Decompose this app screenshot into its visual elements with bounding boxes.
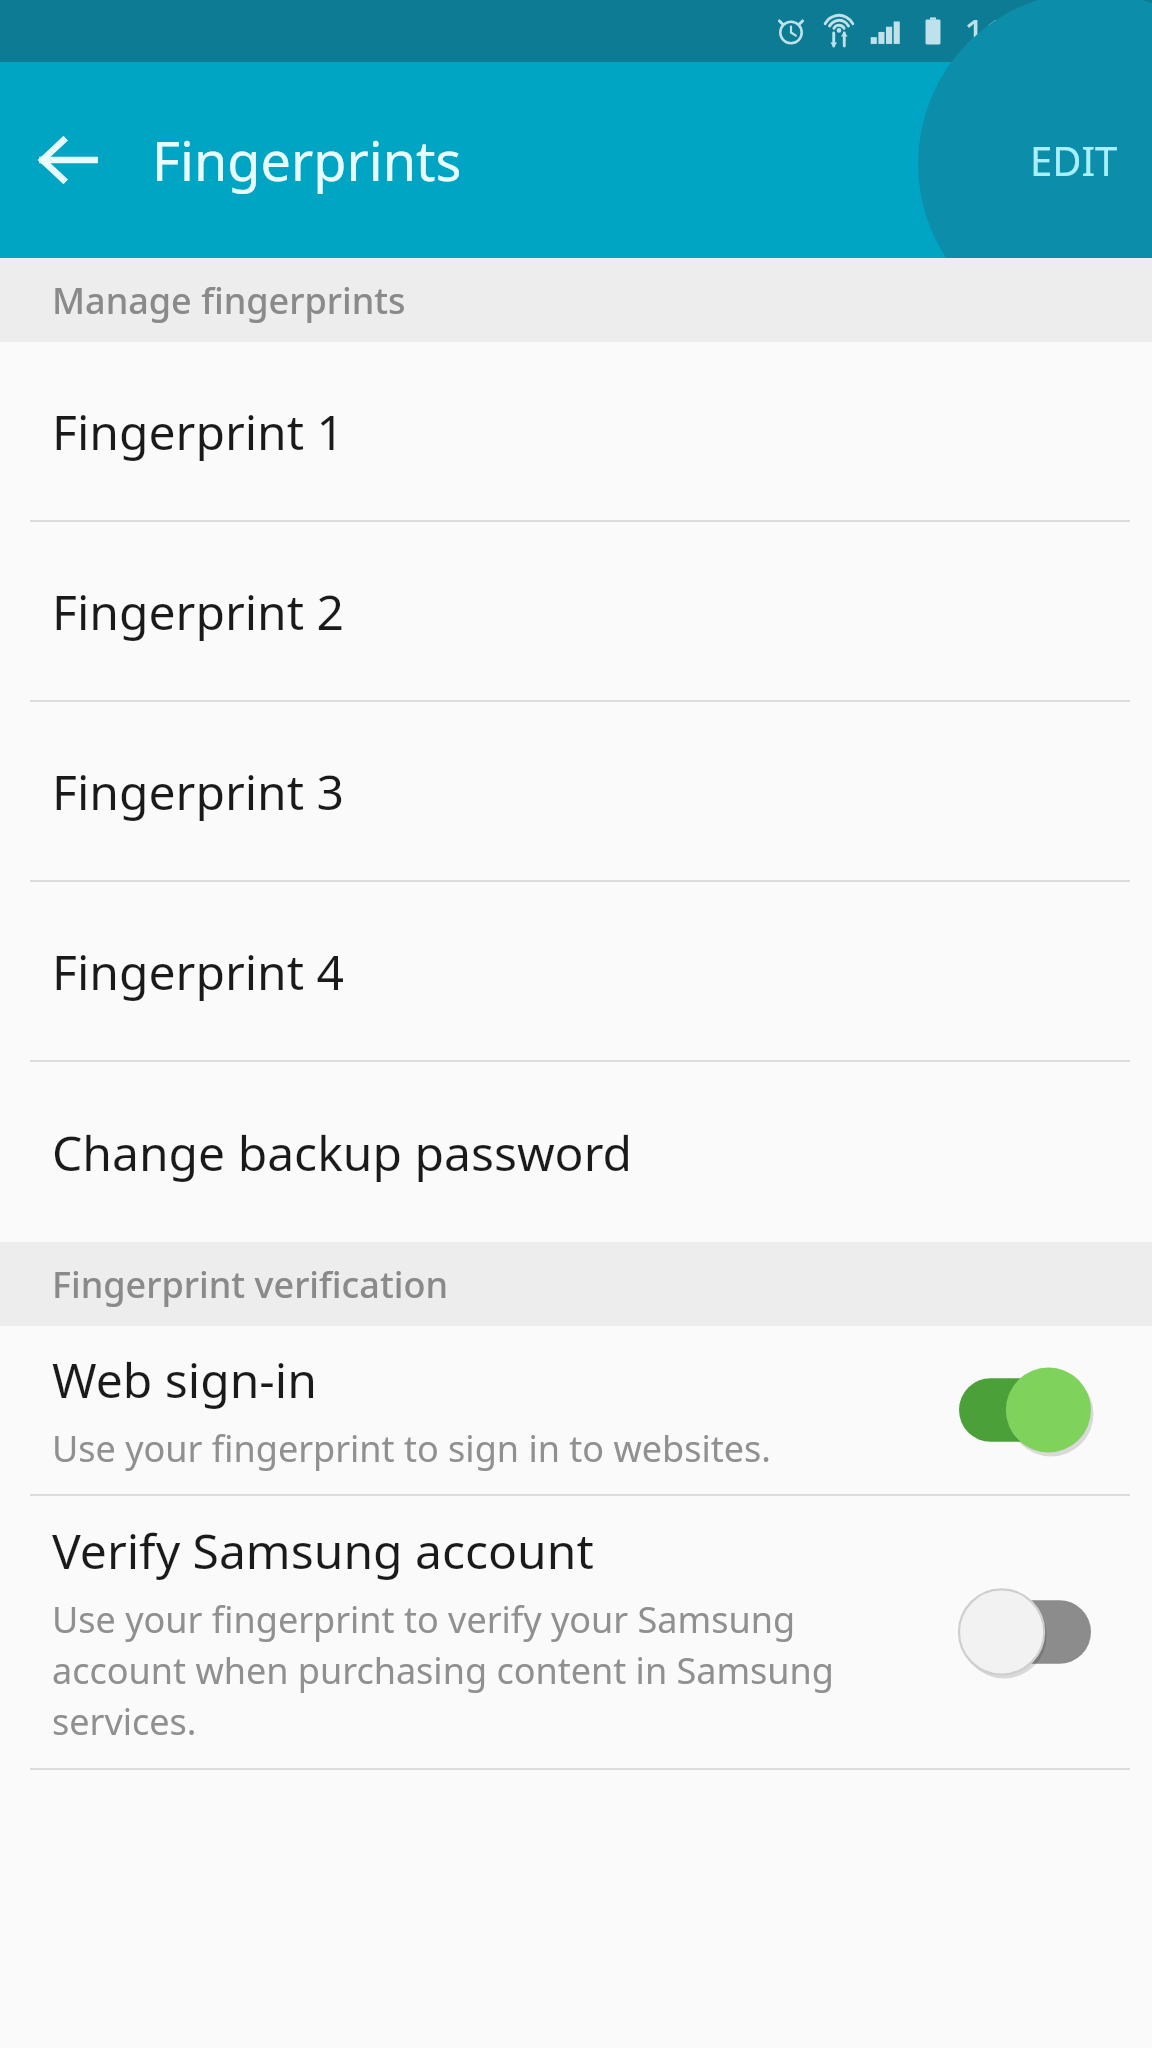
staticText: Fingerprint 3: [52, 759, 345, 824]
staticText: Fingerprint 2: [52, 579, 345, 644]
staticText: Fingerprint verification: [52, 1260, 448, 1309]
staticText: Fingerprint 1: [52, 399, 345, 464]
staticText: EDIT: [1030, 133, 1118, 187]
button[interactable]: Change backup password: [0, 1062, 1152, 1242]
staticText: Verify Samsung account: [52, 1518, 594, 1583]
staticText: Change backup password: [52, 1120, 633, 1185]
staticText: 11:29 AM: [964, 6, 1126, 56]
staticText: Use your fingerprint to sign in to websi…: [52, 1424, 771, 1473]
staticText: Web sign-in: [52, 1347, 317, 1412]
staticText: Use your fingerprint to verify your Sams…: [52, 1595, 892, 1746]
button[interactable]: Verify Samsung account off: [930, 1562, 1120, 1702]
button[interactable]: Fingerprint 4: [0, 882, 1152, 1060]
staticText: Manage fingerprints: [52, 276, 406, 325]
button[interactable]: Fingerprint 1: [0, 342, 1152, 520]
button[interactable]: Verify Samsung account: [0, 1496, 1152, 1768]
button[interactable]: Fingerprint 3: [0, 702, 1152, 880]
button[interactable]: Web sign-in on: [930, 1340, 1120, 1480]
staticText: Fingerprint 4: [52, 939, 345, 1004]
staticText: Fingerprints: [152, 123, 462, 197]
button[interactable]: Web sign-in: [0, 1326, 1152, 1494]
button[interactable]: Back: [22, 114, 114, 206]
button[interactable]: Fingerprint 2: [0, 522, 1152, 700]
button[interactable]: EDIT: [996, 62, 1152, 258]
